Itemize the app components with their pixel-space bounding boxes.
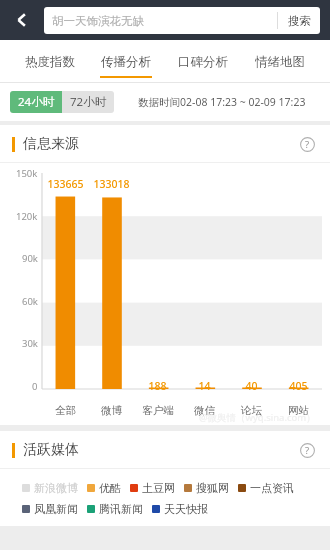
staticText: ? xyxy=(305,138,310,151)
staticText: 150k xyxy=(16,167,38,178)
staticText: 搜索 xyxy=(288,14,311,28)
staticText: ? xyxy=(305,444,310,457)
staticText: 40 xyxy=(245,379,258,393)
staticText: 天天快报 xyxy=(164,502,208,516)
button[interactable]: 热度指数 xyxy=(12,40,88,83)
button[interactable]: 情绪地图 xyxy=(241,40,318,83)
button[interactable]: 传播分析 xyxy=(88,40,164,83)
staticText: 188 xyxy=(148,379,167,393)
staticText: 腾讯新闻 xyxy=(99,502,143,516)
button[interactable]: 搜狐网 xyxy=(184,481,238,495)
staticText: @微舆情（wyq.sina.com） xyxy=(199,411,316,424)
button[interactable]: 凤凰新闻 xyxy=(22,502,87,516)
staticText: 0 xyxy=(32,380,38,391)
staticText: 30k xyxy=(22,337,38,348)
staticText: 微博 xyxy=(101,404,122,417)
staticText: 信息来源 xyxy=(23,135,79,153)
button[interactable]: 胡一天饰演花无缺 xyxy=(44,7,320,34)
staticText: 24小时 xyxy=(18,94,55,110)
button[interactable]: 优酷 xyxy=(87,481,130,495)
staticText: 客户端 xyxy=(142,404,174,417)
staticText: 新浪微博 xyxy=(34,481,78,495)
staticText: 一点资讯 xyxy=(250,481,294,495)
staticText: 搜狐网 xyxy=(196,481,229,495)
button[interactable]: Back xyxy=(0,0,44,40)
staticText: 14 xyxy=(198,379,211,393)
staticText: 405 xyxy=(289,379,308,393)
button[interactable]: 口碑分析 xyxy=(164,40,241,83)
button[interactable]: Help xyxy=(292,435,322,465)
staticText: 72小时 xyxy=(70,94,107,110)
staticText: 数据时间02-08 17:23 ~ 02-09 17:23 xyxy=(138,95,306,109)
staticText: 论坛 xyxy=(241,404,262,417)
button[interactable]: 24小时 xyxy=(10,91,62,113)
staticText: 口碑分析 xyxy=(178,54,228,70)
staticText: 传播分析 xyxy=(101,54,151,70)
staticText: 胡一天饰演花无缺 xyxy=(52,14,277,28)
staticText: 网站 xyxy=(288,404,309,417)
staticText: 土豆网 xyxy=(142,481,175,495)
staticText: 情绪地图 xyxy=(255,54,305,70)
staticText: 全部 xyxy=(55,404,76,417)
button[interactable]: 腾讯新闻 xyxy=(87,502,152,516)
staticText: 凤凰新闻 xyxy=(34,502,78,516)
button[interactable]: 一点资讯 xyxy=(238,481,303,495)
staticText: 优酷 xyxy=(99,481,121,495)
staticText: 热度指数 xyxy=(25,54,75,70)
button[interactable]: 搜索 xyxy=(278,7,320,34)
staticText: 133018 xyxy=(93,177,130,191)
button[interactable]: 土豆网 xyxy=(130,481,184,495)
button[interactable]: 天天快报 xyxy=(152,502,217,516)
button[interactable]: 72小时 xyxy=(62,91,114,113)
staticText: 60k xyxy=(22,295,38,306)
button[interactable]: 新浪微博 xyxy=(22,481,87,495)
staticText: 120k xyxy=(16,210,38,221)
button[interactable]: Help xyxy=(292,129,322,159)
staticText: 90k xyxy=(22,252,38,263)
staticText: 微信 xyxy=(194,404,215,417)
staticText: 133665 xyxy=(47,177,84,191)
staticText: 活跃媒体 xyxy=(23,441,79,459)
